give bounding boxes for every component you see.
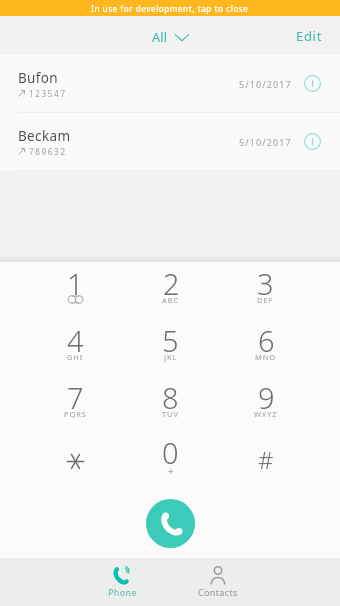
staticText: Edit	[296, 27, 323, 45]
button[interactable]: 7	[27, 376, 123, 432]
staticText: MNO	[255, 352, 277, 362]
staticText: Contacts	[198, 586, 238, 598]
button[interactable]: Call	[146, 499, 195, 548]
staticText: All	[152, 28, 168, 46]
staticText: +	[168, 464, 174, 478]
staticText: 3	[257, 264, 274, 303]
staticText: Bufon	[18, 69, 59, 87]
button[interactable]: 0	[123, 433, 218, 489]
staticText: 5	[162, 321, 179, 360]
staticText: 5/10/2017	[239, 136, 292, 148]
staticText: 789632	[29, 146, 67, 157]
staticText: 2	[163, 264, 180, 303]
staticText: 5/10/2017	[239, 78, 292, 90]
button[interactable]	[27, 433, 123, 489]
staticText: Phone	[108, 586, 137, 598]
button[interactable]: Bufon	[0, 55, 340, 112]
button[interactable]: Call details	[304, 133, 321, 150]
button[interactable]: In use for development, tap to close	[0, 0, 340, 16]
button[interactable]: 1	[27, 262, 123, 318]
staticText: GHI	[67, 352, 84, 362]
button[interactable]: 3	[218, 262, 313, 318]
button[interactable]: Beckam	[0, 113, 340, 170]
staticText: 0	[162, 433, 179, 472]
button[interactable]: Call details	[304, 75, 321, 92]
button[interactable]: 5	[123, 319, 218, 375]
staticText: 8	[162, 378, 179, 417]
staticText: ABC	[162, 295, 180, 305]
staticText: 123547	[29, 88, 67, 99]
button[interactable]: 4	[27, 319, 123, 375]
button[interactable]: Edit	[279, 19, 340, 53]
button[interactable]: #	[218, 433, 313, 489]
staticText: 4	[67, 321, 84, 360]
button[interactable]: 2	[123, 262, 218, 318]
staticText: WXYZ	[254, 409, 278, 419]
staticText: 7	[67, 378, 84, 417]
button[interactable]: Phone	[98, 558, 146, 606]
staticText: Beckam	[18, 127, 71, 145]
button[interactable]: 6	[218, 319, 313, 375]
staticText: #	[258, 443, 274, 476]
button[interactable]: 8	[123, 376, 218, 432]
button[interactable]: Contacts	[194, 558, 242, 606]
staticText: 1	[67, 264, 84, 303]
staticText: TUV	[162, 409, 179, 419]
button[interactable]: All	[146, 22, 195, 52]
staticText: PQRS	[64, 409, 87, 419]
staticText: 9	[258, 378, 275, 417]
staticText: 6	[258, 321, 275, 360]
button[interactable]: 9	[218, 376, 313, 432]
staticText: JKL	[164, 352, 178, 362]
staticText: In use for development, tap to close	[91, 3, 249, 14]
staticText: DEF	[257, 295, 274, 305]
